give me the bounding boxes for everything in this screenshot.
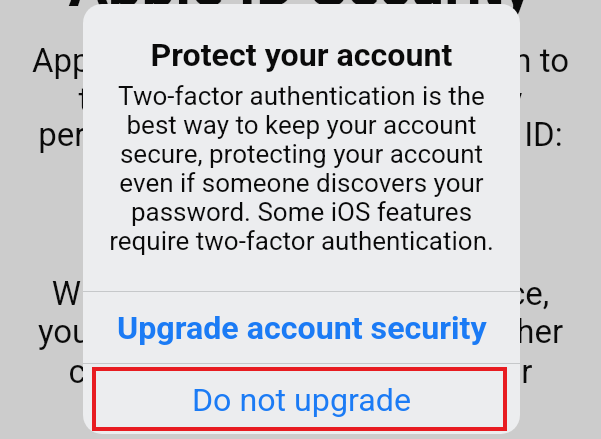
staticText: Protect your account (83, 36, 520, 74)
staticText: confirmation code to verify your (0, 352, 601, 391)
staticText: you may be asked to supply another (0, 312, 601, 351)
staticText: personal info used by your Apple ID: (0, 115, 601, 154)
staticText: When you sign in on a new device, (0, 274, 601, 313)
staticText: the services you use every day (0, 80, 601, 119)
staticText: Apple ID Security (0, 0, 601, 20)
button[interactable]: Upgrade account security (83, 292, 520, 363)
staticText: Do not upgrade (192, 381, 412, 419)
staticText: Upgrade account security (117, 309, 487, 347)
staticText: Apple ID is what you use to sign in to (0, 41, 601, 80)
staticText: Two-factor authentication is the best wa… (93, 81, 510, 256)
button[interactable]: Do not upgrade (83, 365, 520, 434)
